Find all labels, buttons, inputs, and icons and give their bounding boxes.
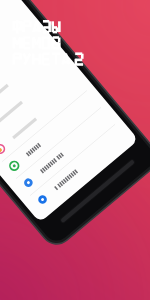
- button[interactable]: Фразы мемов Рунета 2 promotional banner: [0, 0, 150, 300]
